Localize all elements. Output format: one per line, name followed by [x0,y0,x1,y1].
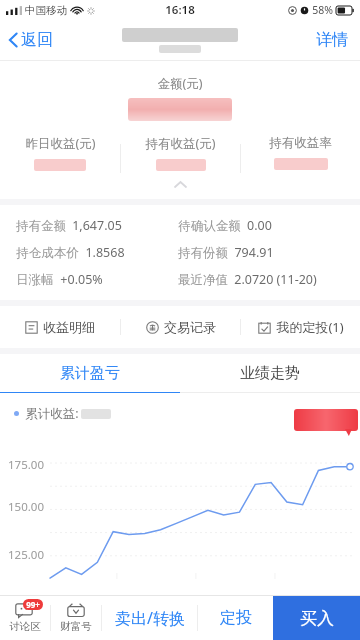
staticText: 中国移动 [25,4,67,17]
staticText: 持仓成本价 [16,245,79,261]
staticText: 定投 [220,608,252,628]
staticText: 持有金额 [16,218,66,234]
staticText: 794.91 [234,244,274,261]
staticText: 累计盈亏 [60,364,120,383]
staticText: 累计收益: [25,405,79,422]
staticText: 58% [312,3,333,17]
staticText: 买入 [300,608,334,629]
staticText: 昨日收益(元) [25,135,96,152]
staticText: 1,647.05 [72,217,122,234]
staticText: +0.05% [60,271,103,288]
button[interactable]: 我的定投(1) [241,306,360,348]
staticText: 持有收益(元) [145,135,216,152]
button[interactable]: 交易记录 [121,306,240,348]
staticText: 16:18 [165,2,195,18]
staticText: 我的定投(1) [276,318,344,336]
staticText: 金额(元) [157,75,203,92]
button[interactable]: 99+ [0,596,50,640]
button[interactable]: 业绩走势 [180,354,360,392]
button[interactable]: 财富号 [51,596,101,640]
button[interactable]: 定投 [198,596,273,640]
staticText: 交易记录 [164,319,216,335]
staticText: 0.00 [247,217,272,234]
staticText: 175.00 [8,457,44,473]
staticText: 持有收益率 [269,135,332,151]
staticText: 讨论区 [9,620,41,633]
staticText: 待确认金额 [178,218,241,234]
staticText: 业绩走势 [240,364,300,383]
staticText: 99+ [26,599,40,610]
button[interactable]: 买入 [273,596,360,640]
staticText: 1.8568 [85,244,125,261]
staticText: 详情 [316,30,348,50]
staticText: 日涨幅 [16,272,54,288]
staticText: 持有份额 [178,245,228,261]
staticText: 150.00 [8,499,44,515]
staticText: 最近净值 [178,272,228,288]
button[interactable]: 详情 [304,24,360,56]
button[interactable]: 累计盈亏 [0,354,180,392]
button[interactable]: 返回 [0,24,63,56]
staticText: 返回 [21,30,53,50]
staticText: 收益明细 [43,319,95,335]
button[interactable]: 卖出/转换 [102,596,197,640]
staticText: 125.00 [8,547,44,563]
staticText: 财富号 [60,620,92,633]
staticText: 卖出/转换 [115,607,185,629]
button[interactable]: 收益明细 [0,306,120,348]
staticText: 2.0720 (11-20) [234,271,317,288]
